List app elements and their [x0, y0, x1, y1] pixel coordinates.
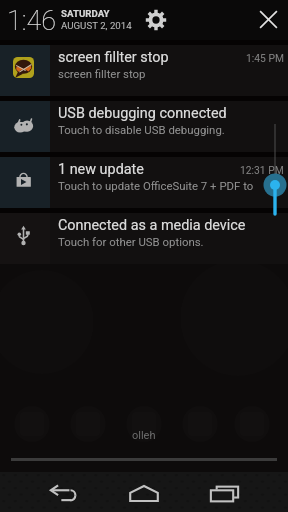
button[interactable]: USB debugging connected — [0, 101, 288, 152]
staticText: Connected as a media device — [58, 217, 246, 234]
staticText: 1 new update — [58, 161, 144, 178]
staticText: 12:31 PM — [240, 164, 284, 176]
staticText: screen fillter stop — [58, 67, 146, 80]
button[interactable]: Connected as a media device — [0, 213, 288, 264]
staticText: Touch for other USB options. — [58, 235, 204, 248]
staticText: Touch to disable USB debugging. — [58, 123, 225, 136]
button[interactable]: screen fillter stop — [0, 45, 288, 96]
staticText: AUGUST 2, 2014 — [61, 20, 132, 31]
button[interactable]: Recent apps — [192, 472, 288, 512]
staticText: screen fillter stop — [58, 49, 169, 66]
staticText: SATURDAY — [61, 8, 110, 19]
staticText: USB debugging connected — [58, 105, 227, 122]
button[interactable]: Home — [96, 472, 192, 512]
staticText: olleh — [132, 429, 156, 442]
staticText: 1:45 PM — [246, 52, 284, 64]
button[interactable]: Back — [0, 472, 96, 512]
staticText: 1:46 — [7, 5, 57, 37]
button[interactable]: Settings — [145, 9, 167, 31]
staticText: Touch to update OfficeSuite 7 + PDF to — [58, 179, 254, 192]
button[interactable]: Close — [257, 8, 280, 31]
button[interactable]: 1 new update — [0, 157, 288, 208]
